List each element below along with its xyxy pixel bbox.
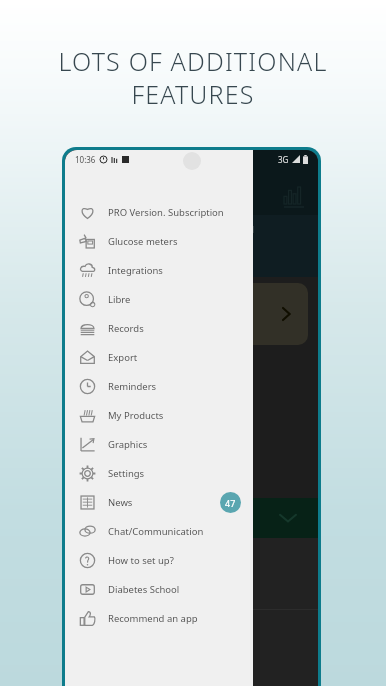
staticText: 3G (278, 154, 289, 165)
button[interactable]: Integrations (65, 256, 253, 285)
staticText: SUN (236, 223, 255, 235)
staticText: 47 (225, 497, 236, 509)
staticText: News (108, 496, 133, 509)
staticText: Diabetes School (108, 583, 180, 596)
staticText: My Products (108, 409, 164, 422)
staticText: Integrations (108, 264, 163, 277)
staticText: Export (108, 351, 138, 364)
button[interactable]: My Products (65, 401, 253, 430)
staticText: Recommend an app (108, 612, 198, 625)
staticText: Graphics (108, 438, 148, 451)
button[interactable]: Libre (65, 285, 253, 314)
button[interactable]: How to set up? (65, 546, 253, 575)
button[interactable]: News (65, 488, 253, 517)
button[interactable]: Settings (65, 459, 253, 488)
button[interactable]: Graphics (65, 430, 253, 459)
staticText: Records (108, 322, 144, 335)
staticText: Glucose meters (108, 235, 178, 248)
staticText: 10:36 (75, 154, 96, 165)
button[interactable]: PRO Version. Subscription (65, 198, 253, 227)
button[interactable]: Diabetes School (65, 575, 253, 604)
staticText: port (65, 592, 83, 604)
button[interactable]: Chat/Communication (65, 517, 253, 546)
button[interactable]: Reminders (65, 372, 253, 401)
staticText: How to set up? (108, 554, 174, 567)
staticText: LOTS OF ADDITIONAL FEATURES (58, 44, 328, 111)
staticText: Libre (108, 293, 131, 306)
staticText: Chat/Communication (108, 525, 204, 538)
button[interactable]: Records (65, 314, 253, 343)
button[interactable]: Glucose meters (65, 227, 253, 256)
staticText: Reminders (108, 380, 157, 393)
staticText: PRO Version. Subscription (108, 206, 224, 219)
staticText: Settings (108, 467, 145, 480)
button[interactable]: Recommend an app (65, 604, 253, 633)
button[interactable]: Export (65, 343, 253, 372)
